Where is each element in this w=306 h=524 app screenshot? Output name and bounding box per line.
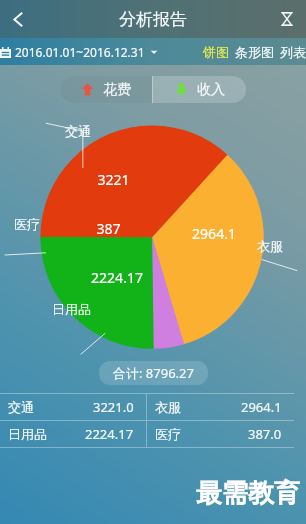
button[interactable]: 花费 — [60, 76, 152, 103]
staticText: 3221.0 — [93, 398, 134, 416]
staticText: 饼图 — [203, 44, 229, 60]
button[interactable]: 2016.01.01~2016.12.31 — [0, 44, 158, 60]
staticText: 2224.17 — [91, 268, 143, 287]
staticText: 3221 — [97, 170, 130, 189]
staticText: 合计: 8796.27 — [113, 364, 194, 382]
staticText: 条形图 — [235, 44, 274, 60]
staticText: 日用品 — [52, 301, 91, 317]
staticText: 387.0 — [248, 425, 282, 443]
button[interactable]: 衣服 — [147, 394, 294, 420]
staticText: 最需教育 — [196, 477, 300, 510]
button[interactable]: 交通 — [0, 394, 146, 420]
staticText: 2016.01.01~2016.12.31 — [15, 44, 145, 60]
staticText: 列表 — [280, 44, 306, 60]
staticText: 2964.1 — [192, 224, 236, 243]
staticText: 收入 — [197, 81, 225, 99]
button[interactable]: 医疗 — [147, 421, 294, 447]
staticText: 日用品 — [8, 426, 47, 442]
staticText: 衣服 — [257, 238, 283, 254]
staticText: 387 — [96, 219, 121, 238]
button[interactable]: 收入 — [153, 76, 246, 103]
staticText: 交通 — [8, 399, 34, 415]
staticText: 分析报告 — [119, 9, 187, 30]
staticText: 医疗 — [155, 426, 181, 442]
staticText: 衣服 — [155, 399, 181, 415]
staticText: 交通 — [65, 123, 91, 139]
button[interactable]: 饼图 — [200, 44, 232, 60]
button[interactable]: Back — [0, 0, 38, 38]
staticText: 2224.17 — [85, 425, 134, 443]
staticText: 医疗 — [14, 216, 40, 232]
staticText: 2964.1 — [241, 398, 282, 416]
button[interactable]: Timer — [268, 0, 306, 38]
button[interactable]: 条形图 — [232, 44, 277, 60]
button[interactable]: 列表 — [277, 44, 306, 60]
button[interactable]: 合计: 8796.27 — [99, 361, 208, 385]
staticText: 花费 — [103, 81, 131, 99]
button[interactable]: 日用品 — [0, 421, 146, 447]
